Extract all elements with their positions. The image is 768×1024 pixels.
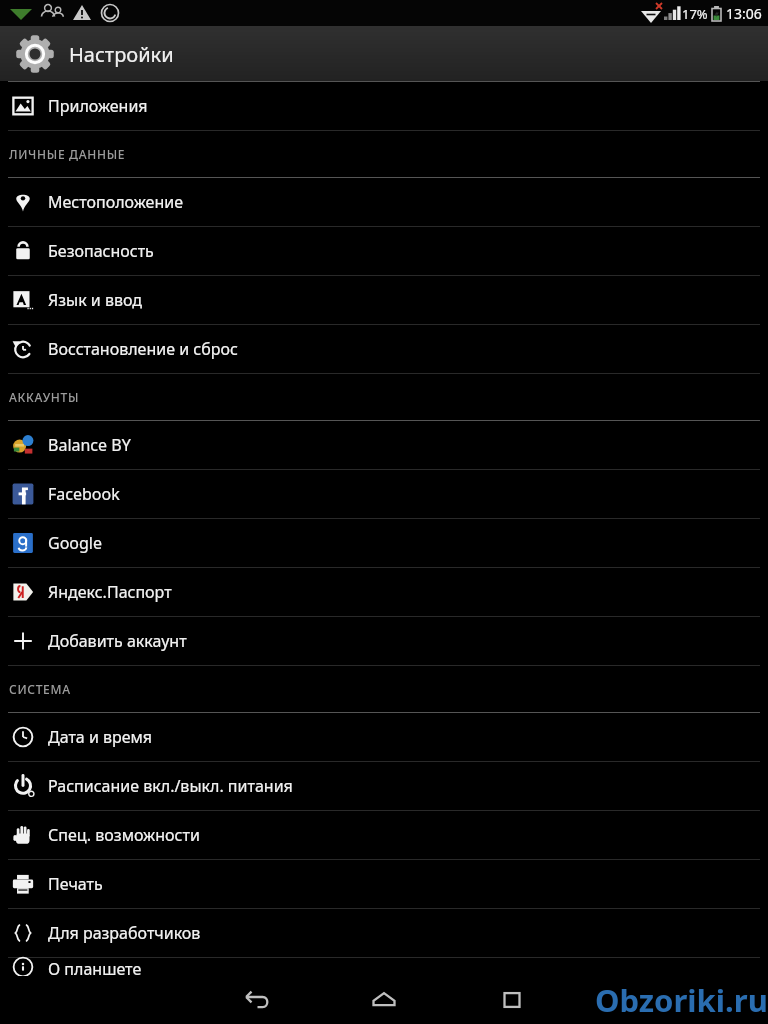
- staticText: Настройки: [69, 41, 174, 68]
- button[interactable]: Местоположение: [0, 178, 768, 226]
- staticText: Balance BY: [48, 434, 131, 456]
- staticText: Спец. возможности: [48, 824, 200, 846]
- button[interactable]: Спец. возможности: [0, 811, 768, 859]
- staticText: Яндекс.Паспорт: [48, 581, 172, 603]
- staticText: АККАУНТЫ: [9, 389, 80, 405]
- staticText: Восстановление и сброс: [48, 338, 238, 360]
- staticText: Безопасность: [48, 240, 154, 262]
- staticText: Печать: [48, 873, 103, 895]
- button[interactable]: Balance BY: [0, 421, 768, 469]
- staticText: Для разработчиков: [48, 922, 201, 944]
- staticText: Приложения: [48, 95, 148, 117]
- button[interactable]: Home: [352, 976, 416, 1024]
- button[interactable]: Приложения: [0, 82, 768, 130]
- staticText: 17%: [682, 5, 708, 23]
- button[interactable]: Для разработчиков: [0, 909, 768, 957]
- staticText: Google: [48, 532, 103, 554]
- button[interactable]: Безопасность: [0, 227, 768, 275]
- staticText: О планшете: [48, 958, 142, 976]
- button[interactable]: Язык и ввод: [0, 276, 768, 324]
- button[interactable]: Дата и время: [0, 713, 768, 761]
- staticText: ЛИЧНЫЕ ДАННЫЕ: [9, 146, 126, 162]
- button[interactable]: Back: [224, 976, 288, 1024]
- button[interactable]: Google: [0, 519, 768, 567]
- staticText: Дата и время: [48, 726, 153, 748]
- staticText: Язык и ввод: [48, 289, 143, 311]
- staticText: 13:06: [726, 4, 762, 23]
- button[interactable]: Facebook: [0, 470, 768, 518]
- staticText: Расписание вкл./выкл. питания: [48, 775, 293, 797]
- staticText: Obzoriki.ru: [595, 979, 768, 1021]
- staticText: СИСТЕМА: [9, 681, 71, 697]
- button[interactable]: О планшете: [0, 958, 768, 976]
- staticText: Facebook: [48, 483, 120, 505]
- button[interactable]: Печать: [0, 860, 768, 908]
- button[interactable]: Восстановление и сброс: [0, 325, 768, 373]
- staticText: Добавить аккаунт: [48, 630, 187, 652]
- staticText: Местоположение: [48, 191, 183, 213]
- button[interactable]: Расписание вкл./выкл. питания: [0, 762, 768, 810]
- button[interactable]: Recent apps: [480, 976, 544, 1024]
- button[interactable]: Добавить аккаунт: [0, 617, 768, 665]
- button[interactable]: Яндекс.Паспорт: [0, 568, 768, 616]
- button[interactable]: Настройки: [0, 26, 768, 81]
